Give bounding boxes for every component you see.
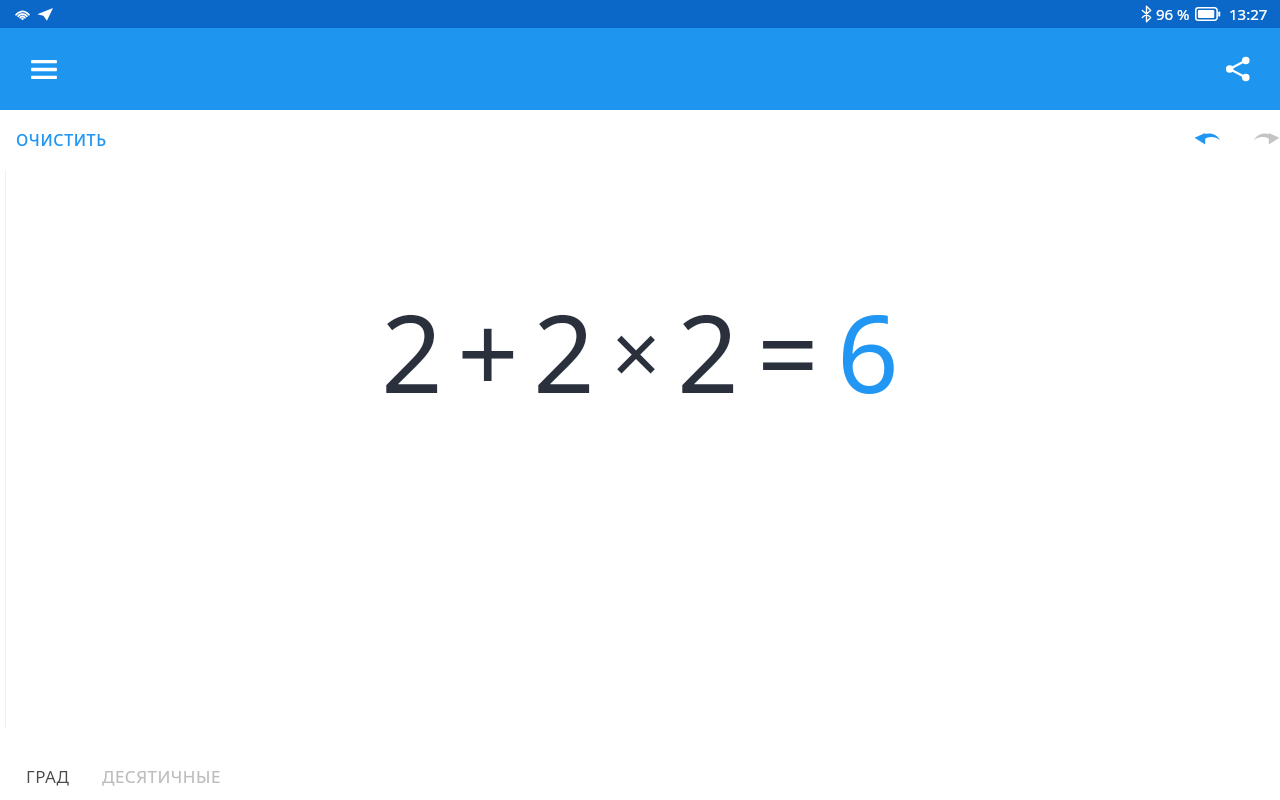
staticText: ДЕСЯТИЧНЫЕ [102, 765, 221, 788]
staticText: = [757, 278, 819, 425]
staticText: 2 [533, 278, 595, 425]
button[interactable]: 2 [381, 278, 899, 425]
button[interactable]: Share [1214, 45, 1262, 93]
staticText: 2 [381, 278, 443, 425]
staticText: 96 % [1156, 4, 1190, 24]
button[interactable]: Redo [1242, 116, 1280, 164]
staticText: 13:27 [1229, 4, 1268, 24]
staticText: 6 [837, 278, 899, 425]
staticText: × [611, 293, 661, 410]
button[interactable]: Menu [20, 45, 68, 93]
staticText: ОЧИСТИТЬ [16, 129, 107, 151]
staticText: 2 [677, 278, 739, 425]
staticText: + [457, 278, 519, 425]
button[interactable]: Undo [1184, 116, 1232, 164]
button[interactable]: ОЧИСТИТЬ [4, 121, 119, 159]
button[interactable]: ДЕСЯТИЧНЫЕ [88, 757, 235, 796]
button[interactable]: ГРАД [0, 757, 88, 796]
staticText: ГРАД [26, 765, 70, 788]
